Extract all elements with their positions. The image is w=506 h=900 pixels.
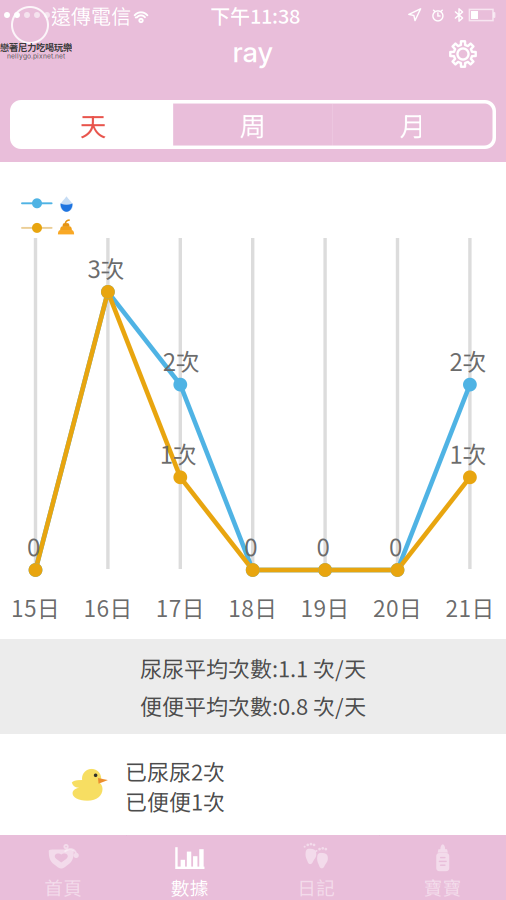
staticText: 已尿尿2次 bbox=[125, 755, 225, 787]
staticText: 天 bbox=[80, 105, 107, 144]
staticText: 15日 bbox=[11, 591, 60, 623]
button[interactable]: 天 bbox=[13, 103, 173, 145]
staticText: 20日 bbox=[373, 591, 422, 623]
staticText: 19日 bbox=[301, 591, 350, 623]
staticText: 16日 bbox=[83, 591, 132, 623]
staticText: 首頁 bbox=[44, 873, 82, 900]
staticText: 0 bbox=[244, 529, 257, 563]
staticText: 1次 bbox=[160, 436, 197, 471]
staticText: 尿尿平均次數:1.1 次/天 bbox=[140, 652, 366, 683]
button[interactable]: 日記 bbox=[253, 835, 379, 900]
staticText: 2次 bbox=[163, 343, 200, 378]
staticText: 月 bbox=[399, 105, 426, 144]
button[interactable]: 月 bbox=[333, 103, 493, 145]
staticText: 0 bbox=[317, 529, 330, 563]
staticText: 戀著尼力吃喝玩樂 bbox=[0, 40, 72, 54]
staticText: 周 bbox=[239, 105, 266, 144]
staticText: 0 bbox=[27, 529, 40, 563]
staticText: 0 bbox=[389, 529, 402, 563]
button[interactable]: 已尿尿2次 bbox=[0, 734, 506, 835]
staticText: 數據 bbox=[171, 873, 209, 900]
staticText: ray bbox=[232, 35, 273, 69]
button[interactable]: 周 bbox=[173, 103, 333, 145]
staticText: 2次 bbox=[449, 343, 486, 378]
staticText: 1次 bbox=[449, 436, 486, 471]
button[interactable]: 寶寶 bbox=[379, 835, 506, 900]
staticText: 遠傳電信 bbox=[51, 0, 131, 29]
staticText: 18日 bbox=[228, 591, 277, 623]
button[interactable]: Settings bbox=[437, 30, 489, 78]
staticText: 下午11:38 bbox=[210, 0, 300, 29]
staticText: 日記 bbox=[297, 873, 335, 900]
button[interactable]: 首頁 bbox=[0, 835, 126, 900]
staticText: 21日 bbox=[445, 591, 494, 623]
button[interactable]: 數據 bbox=[126, 835, 253, 900]
staticText: 17日 bbox=[156, 591, 205, 623]
staticText: 寶寶 bbox=[424, 873, 462, 900]
staticText: 3次 bbox=[87, 250, 124, 285]
staticText: 便便平均次數:0.8 次/天 bbox=[140, 689, 366, 721]
staticText: 已便便1次 bbox=[125, 785, 225, 817]
staticText: nellygo.pixnet.net bbox=[7, 52, 65, 60]
